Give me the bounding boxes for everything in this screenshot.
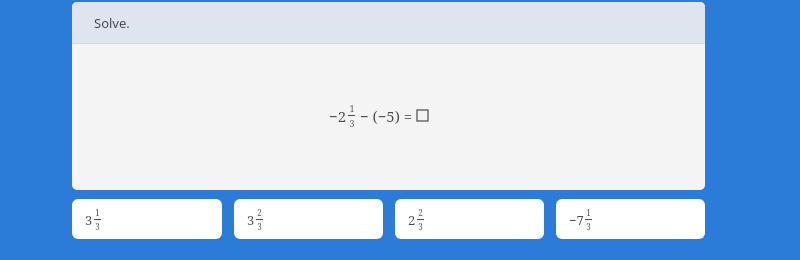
staticText: 3 bbox=[586, 221, 591, 232]
staticText: 1 bbox=[95, 207, 100, 218]
button[interactable]: 2 bbox=[395, 199, 544, 239]
staticText: 2 bbox=[418, 207, 423, 218]
staticText: −2 bbox=[329, 106, 347, 126]
button[interactable]: 3 bbox=[234, 199, 383, 239]
staticText: 2 bbox=[257, 207, 262, 218]
staticText: 3 bbox=[257, 221, 262, 232]
staticText: −7 bbox=[569, 211, 584, 229]
staticText: 3 bbox=[85, 211, 93, 229]
staticText: 2 bbox=[408, 211, 416, 229]
staticText: Solve. bbox=[94, 14, 130, 32]
staticText: 3 bbox=[95, 221, 100, 232]
staticText: 3 bbox=[349, 117, 355, 129]
staticText: − (−5) = bbox=[356, 106, 417, 126]
staticText: 1 bbox=[349, 102, 355, 114]
button[interactable]: 3 bbox=[72, 199, 222, 239]
staticText: 1 bbox=[586, 207, 591, 218]
staticText: 3 bbox=[418, 221, 423, 232]
staticText: 3 bbox=[247, 211, 255, 229]
button[interactable]: −7 bbox=[556, 199, 705, 239]
